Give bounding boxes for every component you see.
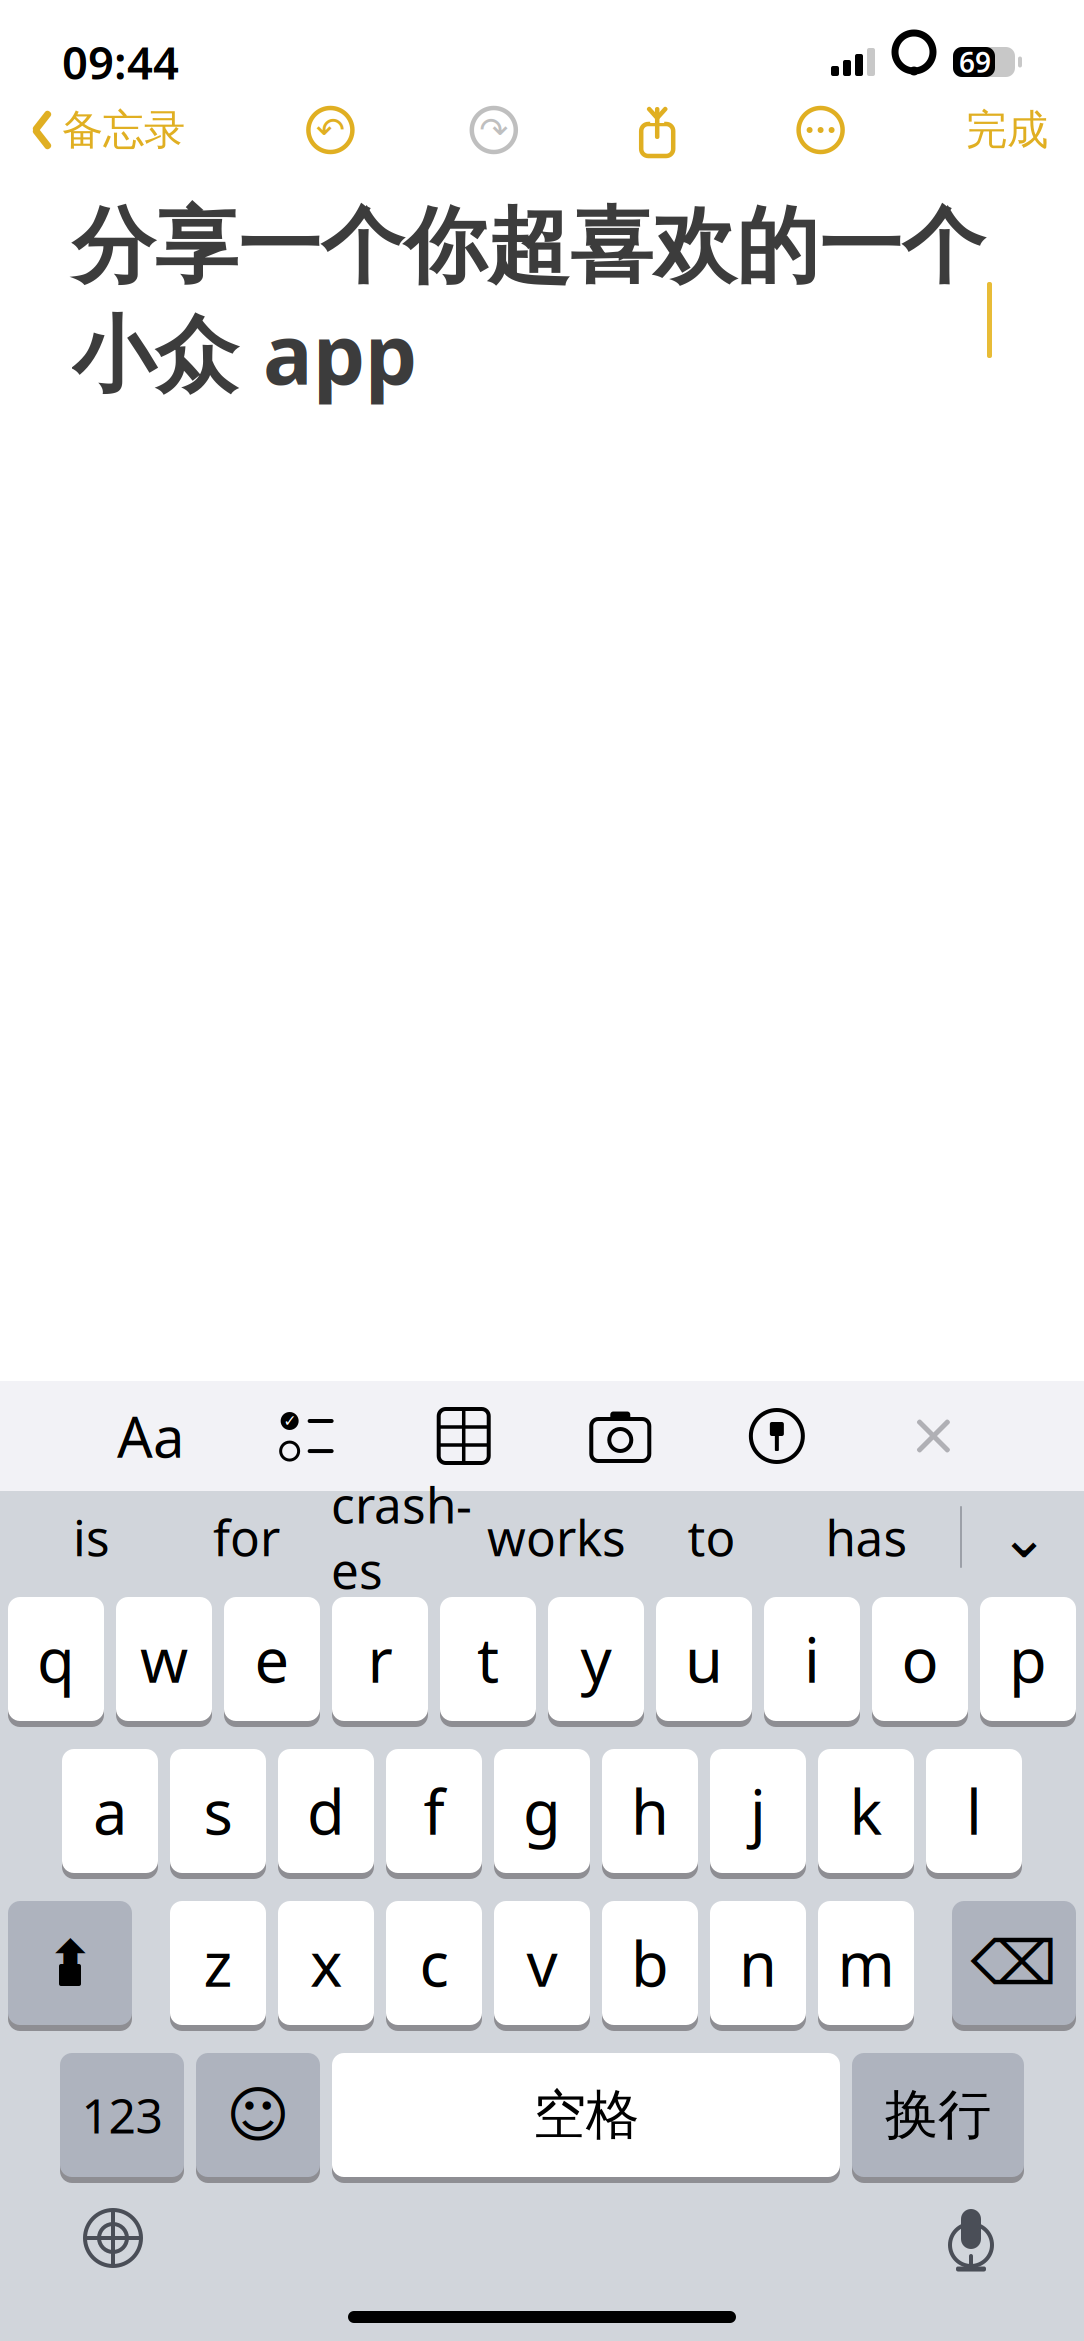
staticText: f: [423, 1770, 444, 1852]
button[interactable]: k: [818, 1749, 914, 1879]
button[interactable]: ☺: [196, 2053, 320, 2183]
button[interactable]: Hide predictions: [978, 1493, 1070, 1581]
staticText: r: [367, 1618, 392, 1700]
button[interactable]: w: [116, 1597, 212, 1727]
button[interactable]: More: [797, 99, 845, 161]
staticText: has: [825, 1504, 907, 1570]
button[interactable]: to: [634, 1493, 789, 1581]
staticText: Aa: [117, 1399, 184, 1473]
button[interactable]: 123: [60, 2053, 184, 2183]
button[interactable]: Share: [633, 99, 681, 161]
button[interactable]: t: [440, 1597, 536, 1727]
staticText: crashes: [331, 1471, 472, 1602]
staticText: z: [203, 1922, 232, 2004]
staticText: n: [739, 1922, 777, 2004]
staticText: to: [687, 1504, 735, 1570]
button[interactable]: 备忘录: [24, 99, 191, 161]
button[interactable]: Dictate: [916, 2183, 1026, 2293]
staticText: 123: [81, 2083, 162, 2147]
staticText: ↶: [316, 110, 345, 150]
staticText: 69: [959, 43, 991, 81]
button[interactable]: is: [14, 1493, 169, 1581]
staticText: q: [37, 1618, 75, 1700]
button[interactable]: s: [170, 1749, 266, 1879]
button[interactable]: c: [386, 1901, 482, 2031]
staticText: h: [631, 1770, 669, 1852]
staticText: for: [213, 1504, 280, 1570]
button[interactable]: h: [602, 1749, 698, 1879]
button[interactable]: a: [62, 1749, 158, 1879]
button[interactable]: Checklist: [267, 1381, 347, 1491]
button[interactable]: Delete: [952, 1901, 1076, 2031]
staticText: t: [477, 1618, 499, 1700]
button[interactable]: Redo: [470, 99, 518, 161]
button[interactable]: f: [386, 1749, 482, 1879]
button[interactable]: crashes: [324, 1493, 479, 1581]
staticText: p: [1009, 1618, 1047, 1700]
button[interactable]: v: [494, 1901, 590, 2031]
staticText: ↷: [479, 110, 508, 150]
button[interactable]: q: [8, 1597, 104, 1727]
button[interactable]: Format: [111, 1381, 191, 1491]
staticText: 空格: [533, 2082, 639, 2148]
button[interactable]: for: [169, 1493, 324, 1581]
staticText: ⌫: [970, 1928, 1057, 1998]
button[interactable]: x: [278, 1901, 374, 2031]
button[interactable]: Close keyboard: [893, 1381, 973, 1491]
button[interactable]: r: [332, 1597, 428, 1727]
staticText: k: [849, 1770, 882, 1852]
button[interactable]: m: [818, 1901, 914, 2031]
button[interactable]: 空格: [332, 2053, 840, 2183]
staticText: ⌄: [999, 1504, 1048, 1570]
staticText: m: [837, 1922, 894, 2004]
staticText: i: [804, 1618, 820, 1700]
staticText: w: [140, 1618, 188, 1700]
button[interactable]: Undo: [306, 99, 354, 161]
staticText: 备忘录: [62, 105, 185, 155]
staticText: l: [966, 1770, 982, 1852]
staticText: s: [203, 1770, 232, 1852]
button[interactable]: n: [710, 1901, 806, 2031]
button[interactable]: Markup: [737, 1381, 817, 1491]
button[interactable]: has: [789, 1493, 944, 1581]
button[interactable]: Camera: [580, 1381, 660, 1491]
button[interactable]: 完成: [960, 99, 1054, 161]
staticText: u: [685, 1618, 723, 1700]
staticText: o: [901, 1618, 938, 1700]
staticText: 完成: [966, 105, 1048, 155]
button[interactable]: o: [872, 1597, 968, 1727]
button[interactable]: 换行: [852, 2053, 1024, 2183]
staticText: v: [526, 1922, 557, 2004]
staticText: d: [307, 1770, 345, 1852]
staticText: g: [523, 1770, 561, 1852]
button[interactable]: p: [980, 1597, 1076, 1727]
staticText: ☺: [226, 2080, 290, 2150]
button[interactable]: works: [479, 1493, 634, 1581]
button[interactable]: l: [926, 1749, 1022, 1879]
staticText: 分享一个你超喜欢的一个小众 app: [72, 196, 985, 407]
staticText: x: [310, 1922, 342, 2004]
button[interactable]: Table: [424, 1381, 504, 1491]
staticText: j: [750, 1770, 766, 1852]
staticText: y: [580, 1618, 611, 1700]
button[interactable]: Shift: [8, 1901, 132, 2031]
button[interactable]: i: [764, 1597, 860, 1727]
staticText: ⬆: [44, 1928, 95, 1998]
staticText: b: [631, 1922, 669, 2004]
button[interactable]: d: [278, 1749, 374, 1879]
button[interactable]: Switch keyboard: [58, 2183, 168, 2293]
staticText: 09:44: [62, 32, 179, 92]
button[interactable]: j: [710, 1749, 806, 1879]
button[interactable]: e: [224, 1597, 320, 1727]
button[interactable]: b: [602, 1901, 698, 2031]
staticText: is: [73, 1504, 110, 1570]
button[interactable]: y: [548, 1597, 644, 1727]
staticText: ✓: [283, 1412, 296, 1430]
button[interactable]: g: [494, 1749, 590, 1879]
staticText: works: [487, 1504, 626, 1570]
staticText: e: [254, 1618, 289, 1700]
button[interactable]: u: [656, 1597, 752, 1727]
button[interactable]: z: [170, 1901, 266, 2031]
staticText: a: [93, 1770, 127, 1852]
staticText: c: [419, 1922, 448, 2004]
